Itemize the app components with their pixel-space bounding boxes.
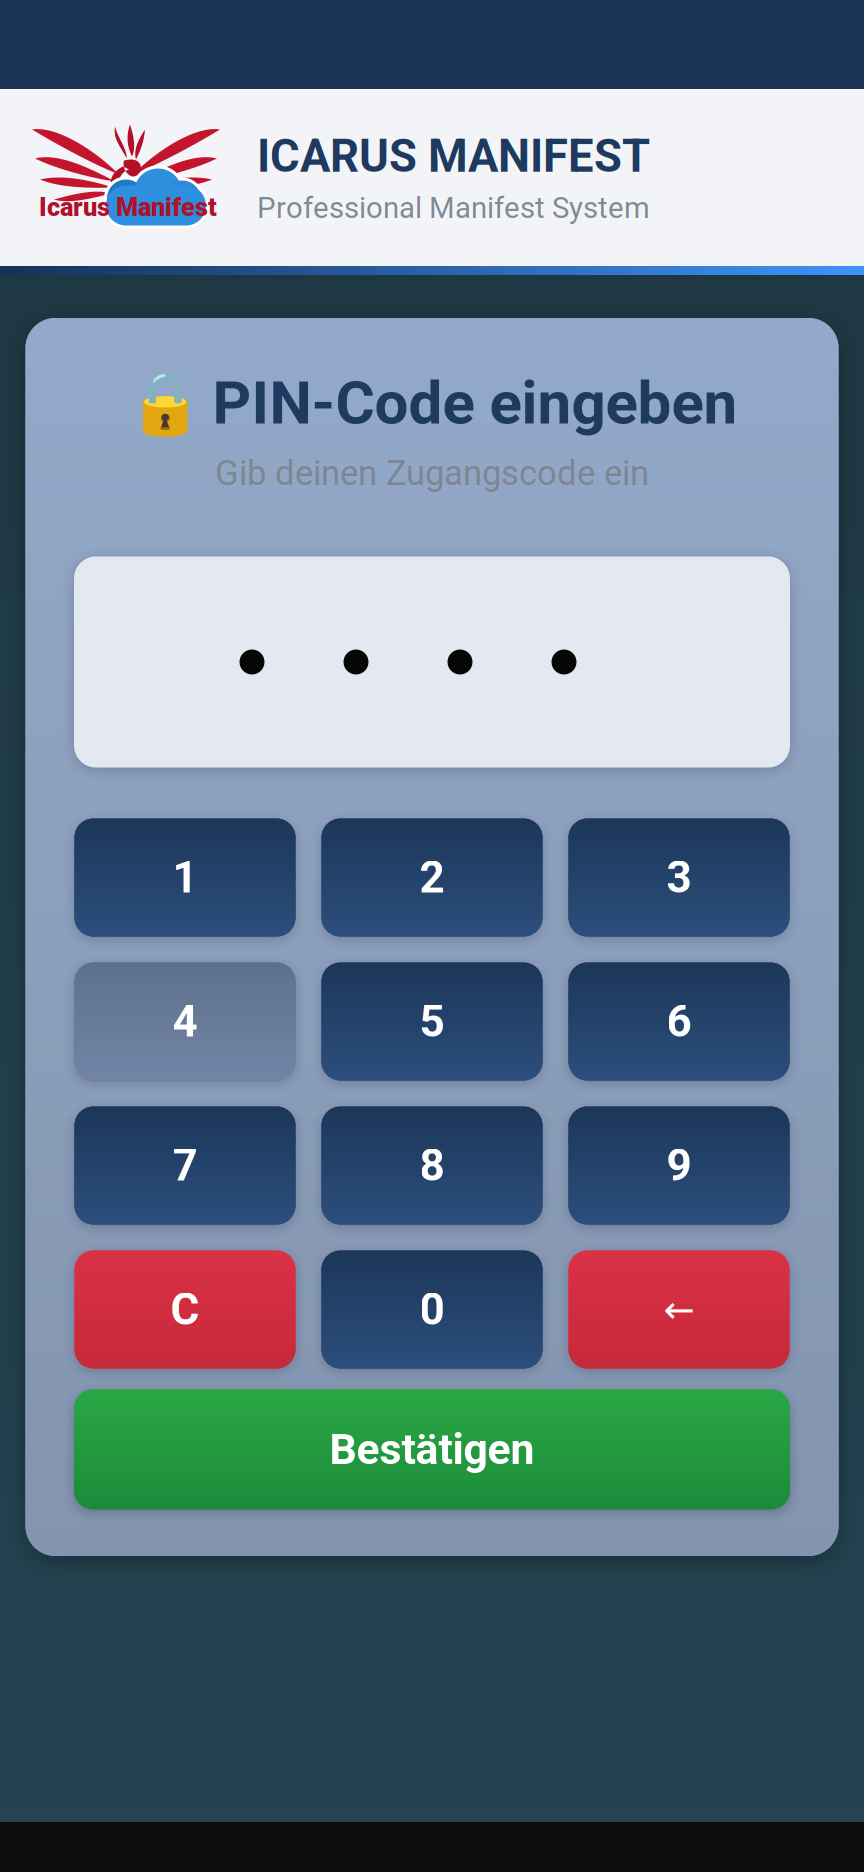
staticText: 6: [666, 996, 691, 1047]
button[interactable]: 2: [321, 818, 542, 936]
staticText: 2: [419, 852, 444, 903]
staticText: Professional Manifest System: [257, 191, 650, 225]
button[interactable]: 1: [74, 818, 295, 936]
button[interactable]: Bestätigen: [74, 1389, 790, 1509]
staticText: 3: [666, 852, 691, 903]
staticText: Gib deinen Zugangscode ein: [215, 453, 649, 493]
button[interactable]: 9: [568, 1106, 789, 1224]
staticText: 9: [666, 1140, 691, 1191]
button[interactable]: 8: [321, 1106, 542, 1224]
button[interactable]: Rücktaste: [568, 1250, 789, 1368]
staticText: C: [170, 1284, 199, 1335]
button[interactable]: 6: [568, 962, 789, 1080]
staticText: 8: [419, 1140, 444, 1191]
staticText: 🔒: [126, 367, 202, 439]
button[interactable]: 7: [74, 1106, 295, 1224]
staticText: Bestätigen: [329, 1424, 534, 1474]
staticText: 1: [172, 852, 197, 903]
staticText: ←: [663, 1288, 694, 1331]
button[interactable]: 3: [568, 818, 789, 936]
button[interactable]: 4: [74, 962, 295, 1080]
staticText: 5: [419, 996, 444, 1047]
button[interactable]: 0: [321, 1250, 542, 1368]
staticText: 7: [172, 1140, 197, 1191]
staticText: 4: [172, 996, 197, 1047]
staticText: PIN-Code eingeben: [212, 368, 737, 438]
staticText: 0: [419, 1284, 444, 1335]
button[interactable]: Löschen: [74, 1250, 295, 1368]
staticText: Icarus Manifest: [39, 192, 217, 222]
staticText: ICARUS MANIFEST: [257, 130, 650, 183]
button[interactable]: 5: [321, 962, 542, 1080]
